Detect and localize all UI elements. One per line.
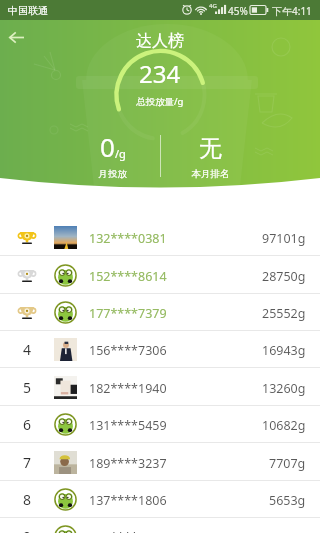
staticText: 5653g bbox=[269, 492, 306, 509]
staticText: 4 bbox=[23, 340, 32, 359]
staticText: 8 bbox=[23, 490, 32, 509]
staticText: 177****7379 bbox=[89, 305, 167, 322]
staticText: 10682g bbox=[262, 417, 306, 434]
button[interactable]: 4 bbox=[0, 331, 320, 368]
staticText: 6 bbox=[23, 415, 32, 434]
staticText: /g bbox=[115, 146, 126, 161]
staticText: 下午4:11 bbox=[272, 4, 312, 18]
staticText: 7 bbox=[23, 453, 32, 472]
staticText: 234 bbox=[139, 57, 181, 90]
staticText: 达人榜 bbox=[136, 31, 184, 51]
button[interactable]: 8 bbox=[0, 481, 320, 518]
button[interactable]: Back bbox=[1, 22, 31, 52]
staticText: 7707g bbox=[269, 455, 306, 472]
staticText: 45% bbox=[228, 4, 248, 18]
button[interactable]: 9 bbox=[0, 518, 320, 533]
staticText: 无 bbox=[182, 134, 239, 163]
staticText: 总投放量/g bbox=[136, 95, 184, 108]
staticText: 5 bbox=[23, 378, 32, 397]
button[interactable]: 132****0381 bbox=[0, 219, 320, 256]
button[interactable]: 7 bbox=[0, 444, 320, 481]
staticText: 28750g bbox=[262, 268, 306, 285]
staticText: 本月排名 bbox=[182, 168, 239, 180]
button[interactable]: 152****8614 bbox=[0, 257, 320, 294]
button[interactable]: 5 bbox=[0, 369, 320, 406]
staticText: 中国联通 bbox=[8, 4, 48, 17]
staticText: 137****1806 bbox=[89, 492, 167, 509]
staticText: 152****8614 bbox=[89, 268, 167, 285]
staticText: 月投放 bbox=[84, 168, 141, 180]
staticText: 132****0381 bbox=[89, 230, 167, 247]
staticText: 4G bbox=[209, 2, 217, 10]
staticText: 9 bbox=[23, 527, 32, 533]
staticText: 188****8798 bbox=[89, 529, 167, 533]
button[interactable]: 177****7379 bbox=[0, 294, 320, 331]
staticText: 131****5459 bbox=[89, 417, 167, 434]
staticText: 25552g bbox=[262, 305, 306, 322]
staticText: 13260g bbox=[262, 380, 306, 397]
staticText: 182****1940 bbox=[89, 380, 167, 397]
staticText: 156****7306 bbox=[89, 342, 167, 359]
staticText: 0 bbox=[100, 129, 115, 164]
staticText: 16943g bbox=[262, 342, 306, 359]
staticText: 189****3237 bbox=[89, 455, 167, 472]
button[interactable]: 6 bbox=[0, 406, 320, 443]
staticText: 97101g bbox=[262, 230, 306, 247]
